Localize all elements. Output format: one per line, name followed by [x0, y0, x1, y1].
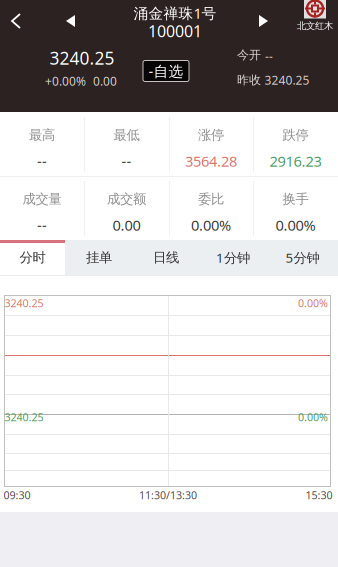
staticText: 成交额	[107, 191, 146, 207]
staticText: 涌金禅珠1号	[133, 3, 216, 23]
staticText: 3240.25	[264, 72, 309, 88]
staticText: 2916.23	[269, 151, 321, 171]
button[interactable]: -自选	[143, 60, 189, 81]
staticText: 1分钟	[216, 249, 250, 266]
staticText: 11:30/13:30	[139, 488, 197, 502]
staticText: 3240.25	[4, 410, 43, 424]
staticText: 最高	[29, 127, 55, 143]
staticText: 09:30	[3, 488, 30, 502]
staticText: --	[37, 151, 47, 171]
staticText: 100001	[148, 20, 202, 42]
staticText: 3240.25	[49, 46, 114, 69]
staticText: 3564.28	[185, 151, 237, 171]
staticText: +0.00%	[45, 73, 86, 89]
staticText: 挂单	[86, 249, 112, 266]
staticText: 跌停	[282, 127, 308, 143]
staticText: -自选	[148, 61, 183, 81]
button[interactable]: 北文红木	[293, 0, 337, 36]
staticText: 0.00%	[275, 215, 315, 235]
staticText: 最低	[113, 127, 139, 143]
staticText: 3240.25	[4, 296, 43, 310]
staticText: 分时	[19, 249, 45, 266]
staticText: 5分钟	[285, 249, 319, 266]
staticText: 委比	[198, 191, 224, 207]
staticText: 0.00	[93, 73, 117, 89]
button[interactable]: 日线	[133, 240, 199, 275]
button[interactable]: Previous	[56, 6, 86, 36]
staticText: 昨收	[237, 73, 261, 87]
button[interactable]: 分时	[0, 240, 65, 275]
staticText: 北文红木	[297, 20, 333, 32]
button[interactable]: Back	[0, 4, 33, 38]
staticText: 0.00%	[298, 296, 328, 310]
button[interactable]: Next	[248, 6, 278, 36]
button[interactable]: 1分钟	[200, 240, 266, 275]
staticText: 15:30	[305, 488, 332, 502]
staticText: --	[265, 48, 273, 64]
staticText: 成交量	[22, 191, 61, 207]
staticText: 0.00%	[298, 410, 328, 424]
button[interactable]: 5分钟	[267, 240, 338, 275]
staticText: --	[121, 151, 131, 171]
staticText: 换手	[282, 191, 308, 207]
staticText: --	[37, 215, 47, 235]
button[interactable]: 挂单	[66, 240, 132, 275]
staticText: 日线	[153, 249, 179, 266]
staticText: 今开	[237, 48, 261, 62]
staticText: 0.00%	[191, 215, 231, 235]
staticText: 0.00	[112, 215, 140, 235]
staticText: 涨停	[198, 127, 224, 143]
